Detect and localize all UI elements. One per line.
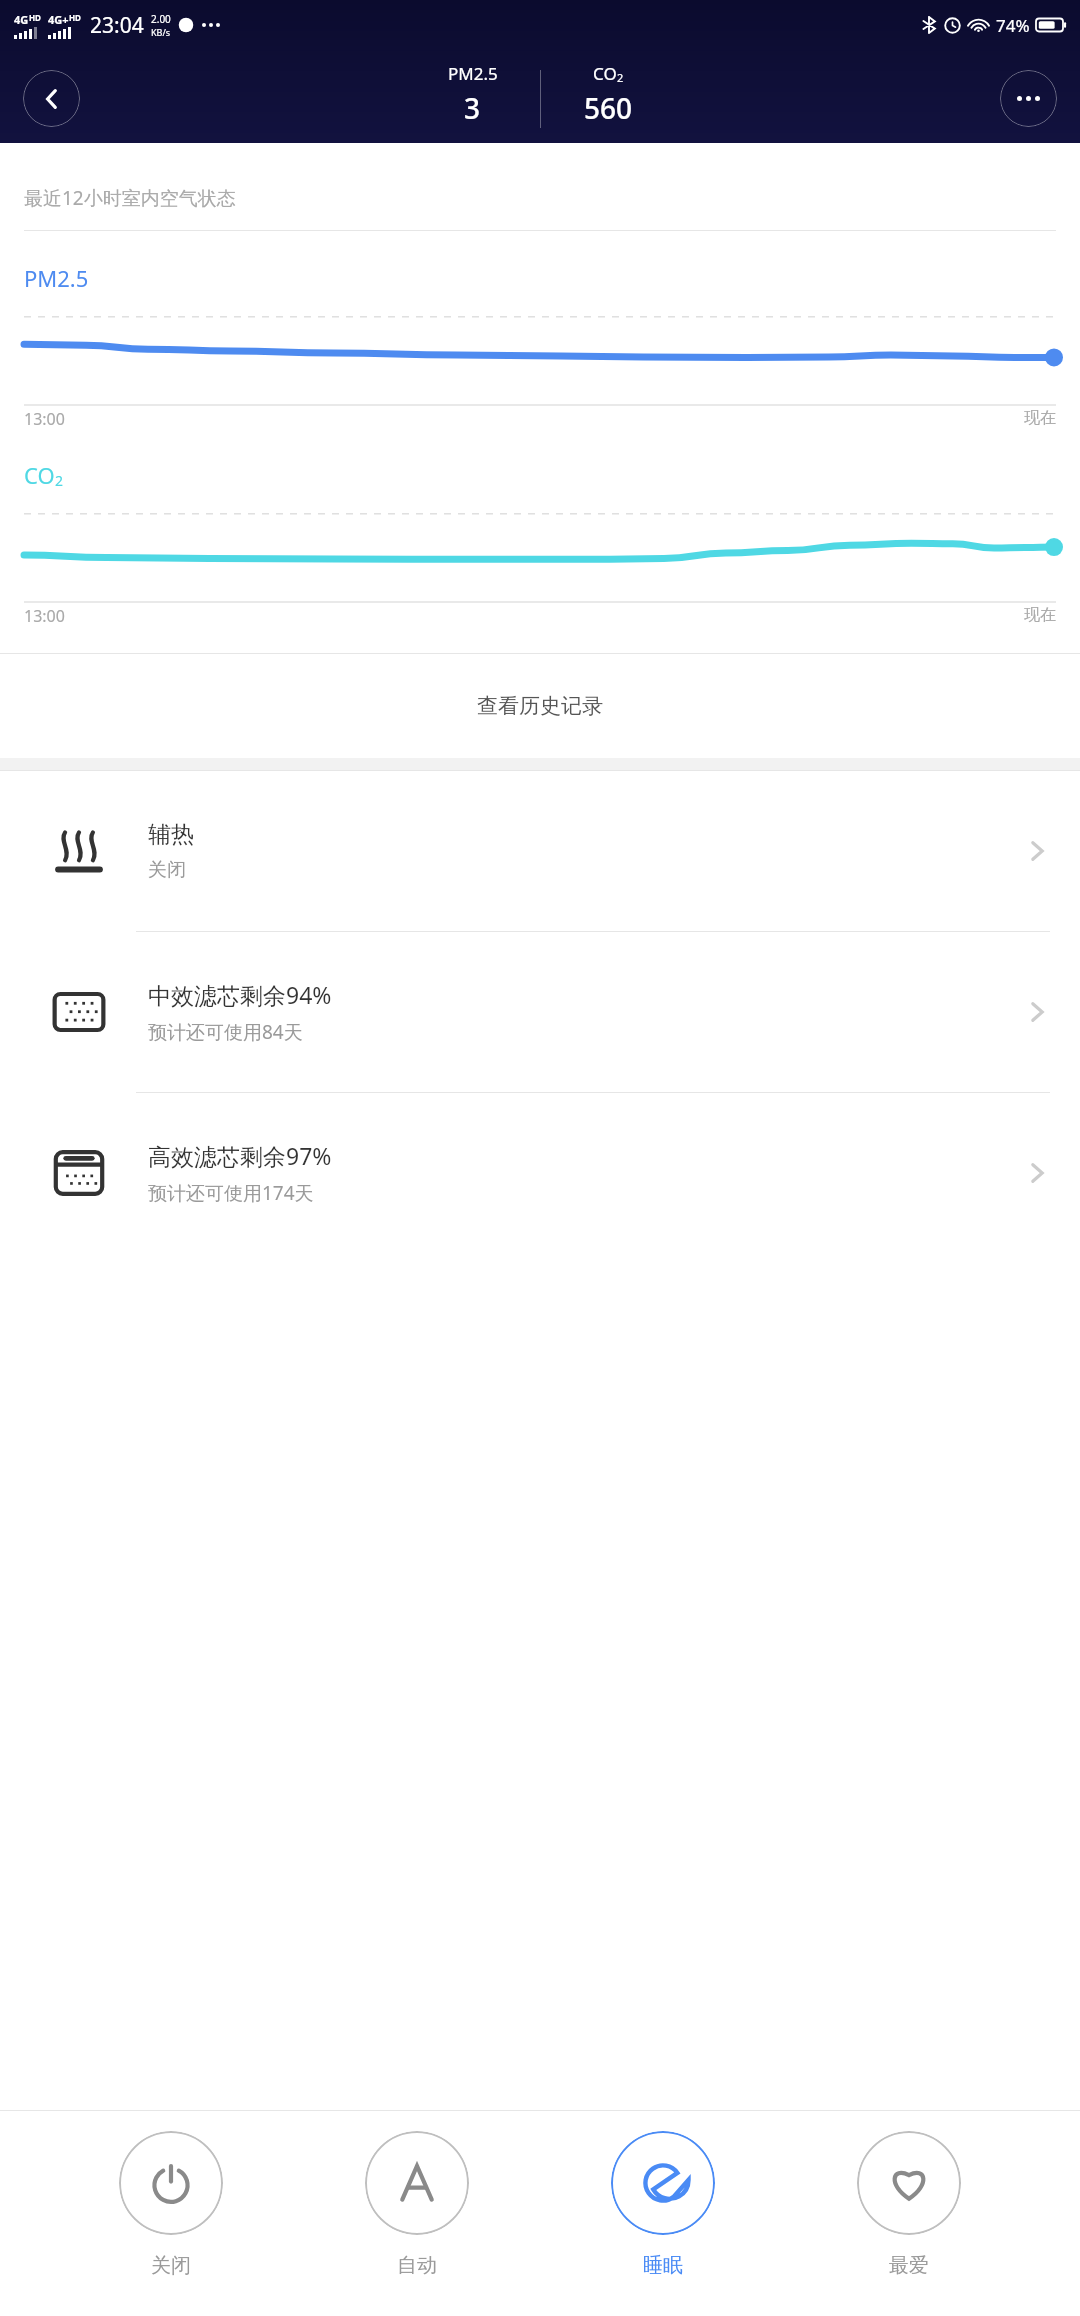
button[interactable]: More options xyxy=(1000,70,1057,127)
staticText: 高效滤芯剩余97% xyxy=(148,1140,332,1171)
button[interactable]: 自动 xyxy=(342,2127,492,2282)
staticText: 3 xyxy=(464,89,481,127)
staticText: 预计还可使用84天 xyxy=(148,1019,303,1045)
staticText: CO xyxy=(24,460,55,490)
button[interactable]: 高效滤芯剩余97% xyxy=(0,1093,1080,1253)
staticText: 最近12小时室内空气状态 xyxy=(24,185,236,211)
staticText: 现在 xyxy=(1024,408,1056,428)
button[interactable]: 最爱 xyxy=(834,2127,984,2282)
staticText: 13:00 xyxy=(24,408,65,430)
button[interactable]: Back xyxy=(23,70,80,127)
staticText: 关闭 xyxy=(151,2253,191,2278)
staticText: 23:04 xyxy=(90,11,144,40)
staticText: HD xyxy=(29,12,41,23)
staticText: PM2.5 xyxy=(448,62,498,85)
staticText: 74% xyxy=(996,14,1030,37)
staticText: 查看历史记录 xyxy=(477,693,603,719)
staticText: KB/s xyxy=(151,26,171,38)
staticText: 预计还可使用174天 xyxy=(148,1180,314,1206)
staticText: 2 xyxy=(617,70,624,85)
staticText: CO xyxy=(593,62,617,85)
button[interactable]: 关闭 xyxy=(96,2127,246,2282)
staticText: 睡眠 xyxy=(643,2253,683,2278)
button[interactable]: 睡眠 xyxy=(588,2127,738,2282)
staticText: HD xyxy=(69,12,81,23)
button[interactable]: 辅热 xyxy=(0,771,1080,932)
staticText: 13:00 xyxy=(24,605,65,627)
staticText: 最爱 xyxy=(889,2253,929,2278)
button[interactable]: 查看历史记录 xyxy=(0,654,1080,758)
staticText: 4G xyxy=(14,12,29,27)
staticText: 自动 xyxy=(397,2253,437,2278)
staticText: 现在 xyxy=(1024,605,1056,625)
button[interactable]: 中效滤芯剩余94% xyxy=(0,932,1080,1093)
staticText: 关闭 xyxy=(148,858,186,882)
staticText: 2 xyxy=(55,471,64,490)
staticText: 560 xyxy=(584,89,633,127)
staticText: 中效滤芯剩余94% xyxy=(148,979,332,1010)
staticText: PM2.5 xyxy=(24,263,89,293)
staticText: 2.00 xyxy=(151,12,171,26)
staticText: 辅热 xyxy=(148,820,194,849)
staticText: 4G+ xyxy=(48,12,69,27)
